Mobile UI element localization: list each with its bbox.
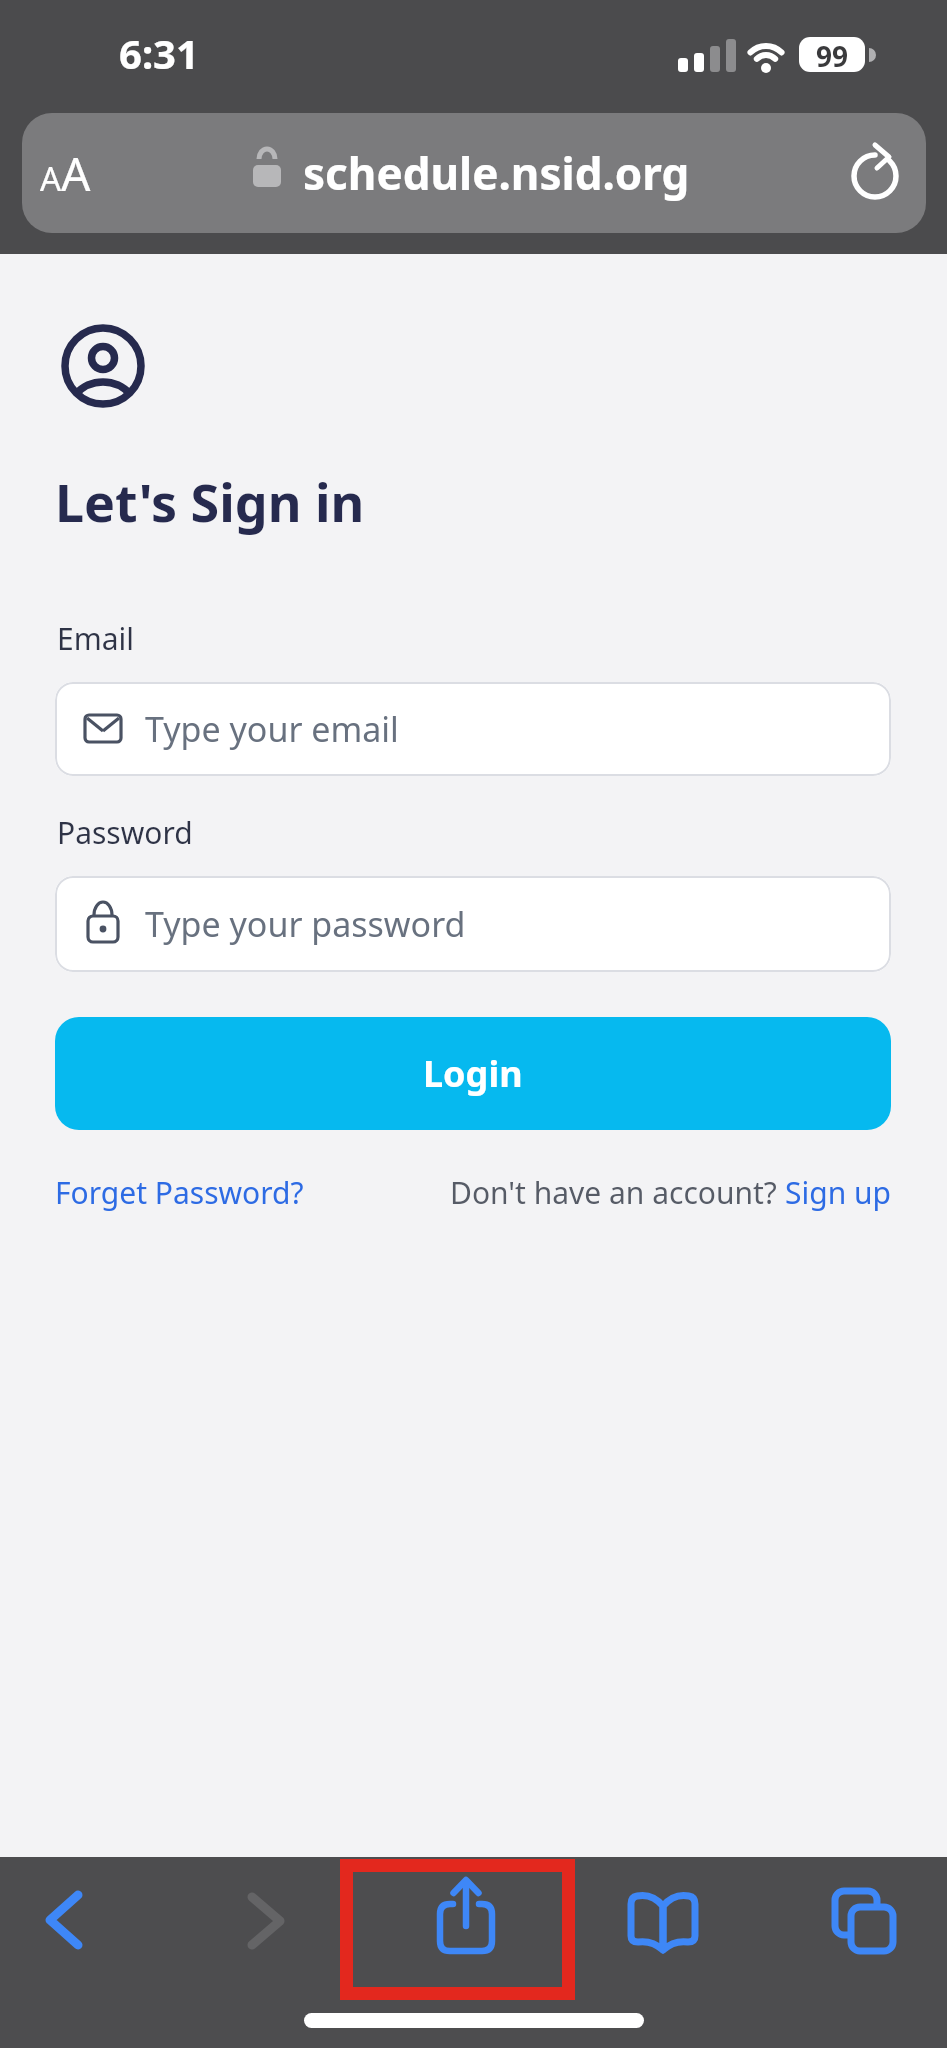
- staticText: Type your password: [145, 901, 466, 947]
- button[interactable]: Type your email: [55, 682, 891, 776]
- staticText: Sign up: [785, 1172, 891, 1213]
- staticText: schedule.nsid.org: [303, 143, 690, 203]
- button[interactable]: [620, 1887, 710, 1967]
- button[interactable]: Sign up: [785, 1172, 891, 1213]
- button[interactable]: Login: [55, 1017, 891, 1130]
- staticText: 6:31: [119, 26, 199, 80]
- staticText: Forget Password?: [55, 1172, 304, 1213]
- staticText: Password: [57, 812, 193, 853]
- staticText: 99: [816, 37, 849, 72]
- button[interactable]: [820, 1887, 910, 1967]
- button[interactable]: Type your password: [55, 876, 891, 972]
- button[interactable]: [25, 1890, 105, 1970]
- staticText: AA: [40, 142, 91, 205]
- button[interactable]: [230, 1890, 310, 1970]
- staticText: Type your email: [145, 706, 399, 752]
- button[interactable]: Forget Password?: [55, 1172, 304, 1213]
- staticText: Email: [57, 618, 135, 659]
- button[interactable]: [420, 1877, 515, 1972]
- staticText: Don't have an account?: [450, 1172, 785, 1213]
- staticText: Let's Sign in: [55, 466, 365, 537]
- staticText: Login: [423, 1049, 523, 1098]
- button[interactable]: AA: [22, 113, 926, 233]
